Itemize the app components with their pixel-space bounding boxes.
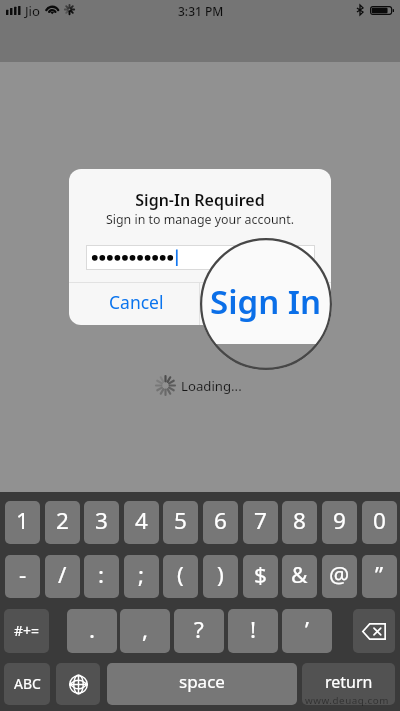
staticText: ( xyxy=(177,559,184,590)
staticText: ’ xyxy=(305,614,309,645)
button[interactable]: - xyxy=(5,555,40,598)
button[interactable]: 9 xyxy=(322,501,357,544)
button[interactable]: space xyxy=(107,663,297,705)
staticText: ; xyxy=(138,559,145,590)
staticText: Jio xyxy=(25,2,40,20)
button[interactable]: 2 xyxy=(45,501,80,544)
staticText: 1 xyxy=(16,505,29,536)
staticText: 3:31 PM xyxy=(178,3,224,19)
staticText: www.deuaq.com xyxy=(305,694,390,707)
staticText: ? xyxy=(194,614,204,645)
staticText: 3 xyxy=(95,505,108,536)
button[interactable]: , xyxy=(120,609,170,653)
staticText: 9 xyxy=(333,505,346,536)
button[interactable]: 7 xyxy=(243,501,278,544)
staticText: Sign In xyxy=(210,279,322,324)
button[interactable]: return xyxy=(302,663,395,705)
staticText: 2 xyxy=(56,505,69,536)
button[interactable]: 4 xyxy=(124,501,159,544)
button[interactable]: Sign In xyxy=(200,283,331,325)
button[interactable]: ? xyxy=(174,609,224,653)
staticText: space xyxy=(179,670,225,693)
button[interactable]: : xyxy=(84,555,119,598)
button[interactable]: 8 xyxy=(282,501,317,544)
button[interactable]: ( xyxy=(163,555,198,598)
button[interactable]: / xyxy=(45,555,80,598)
staticText: & xyxy=(291,559,308,590)
staticText: Loading... xyxy=(181,377,242,395)
staticText: - xyxy=(19,559,27,590)
staticText: Cancel xyxy=(109,290,164,314)
button[interactable]: ! xyxy=(228,609,278,653)
staticText: 0 xyxy=(373,505,386,536)
button[interactable]: Cancel xyxy=(69,283,199,325)
staticText: $ xyxy=(254,559,267,590)
staticText: #+= xyxy=(14,621,40,640)
staticText: 4 xyxy=(135,505,148,536)
button[interactable]: ) xyxy=(203,555,238,598)
staticText: Sign In xyxy=(236,290,295,314)
button[interactable]: ; xyxy=(124,555,159,598)
staticText: 8 xyxy=(293,505,306,536)
button[interactable]: ABC xyxy=(4,663,50,705)
staticText: , xyxy=(142,614,149,645)
button[interactable]: Backspace xyxy=(353,609,395,653)
staticText: @ xyxy=(329,559,350,590)
button[interactable]: @ xyxy=(322,555,357,598)
button[interactable]: 3 xyxy=(84,501,119,544)
button[interactable]: Password xyxy=(87,246,314,269)
staticText: 6 xyxy=(214,505,227,536)
button[interactable]: Sign In magnified xyxy=(200,238,332,370)
staticText: ) xyxy=(217,559,224,590)
button[interactable]: 1 xyxy=(5,501,40,544)
staticText: : xyxy=(98,559,105,590)
staticText: ABC xyxy=(14,674,41,693)
staticText: 5 xyxy=(174,505,187,536)
staticText: ” xyxy=(375,559,384,590)
button[interactable]: 6 xyxy=(203,501,238,544)
button[interactable]: 0 xyxy=(362,501,397,544)
button[interactable]: #+= xyxy=(4,609,49,653)
button[interactable]: Change keyboard language xyxy=(56,663,100,705)
staticText: return xyxy=(325,671,373,693)
button[interactable]: ” xyxy=(362,555,397,598)
staticText: . xyxy=(89,614,96,645)
staticText: ! xyxy=(250,614,257,645)
staticText: / xyxy=(58,559,67,590)
button[interactable]: 5 xyxy=(163,501,198,544)
staticText: 7 xyxy=(254,505,267,536)
button[interactable]: ’ xyxy=(282,609,332,653)
button[interactable]: $ xyxy=(243,555,278,598)
button[interactable]: & xyxy=(282,555,317,598)
staticText: Sign-In Required xyxy=(69,189,331,211)
button[interactable]: . xyxy=(67,609,117,653)
staticText: Sign in to manage your account. xyxy=(69,211,331,228)
